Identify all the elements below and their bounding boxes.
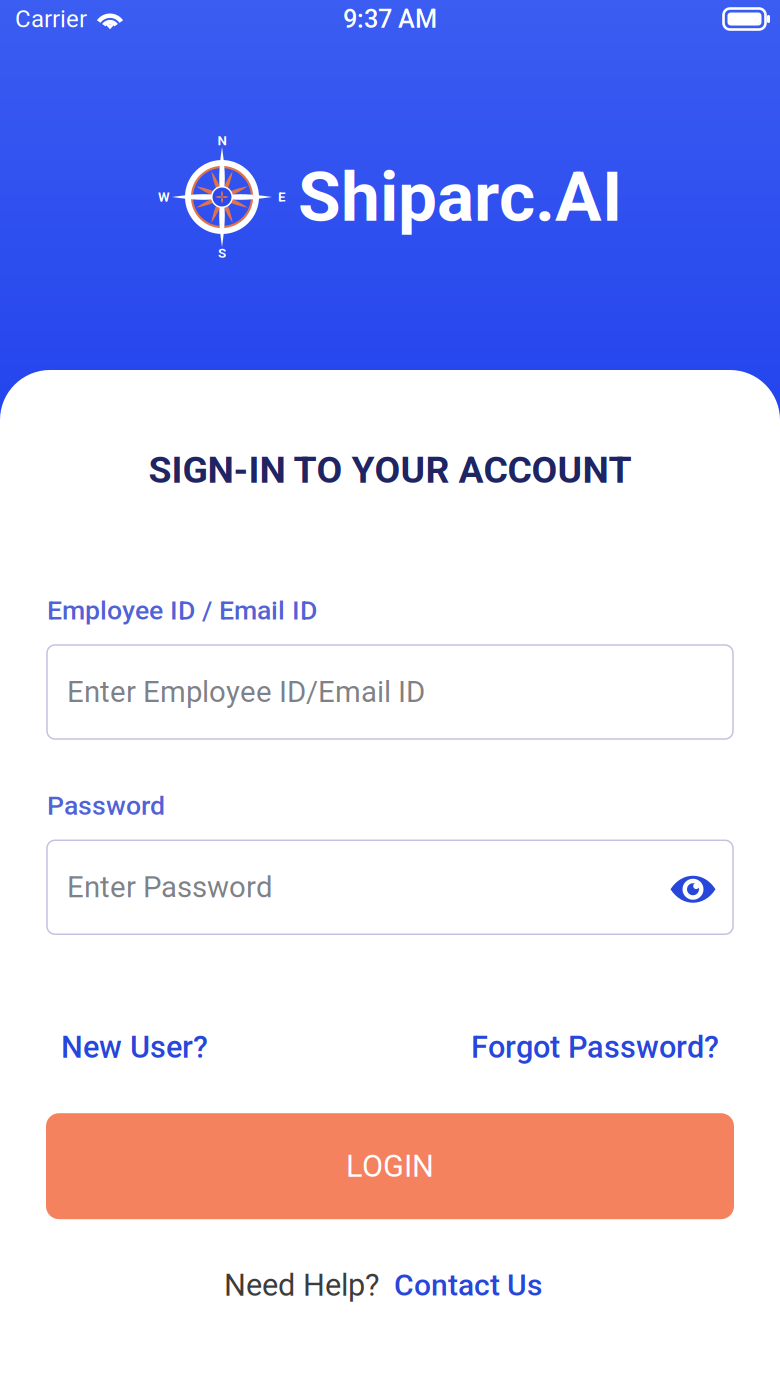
- staticText: Contact Us: [394, 1268, 542, 1303]
- staticText: Employee ID / Email ID: [47, 595, 317, 626]
- button[interactable]: New User?: [61, 1029, 208, 1065]
- button[interactable]: Forgot Password?: [471, 1029, 719, 1065]
- staticText: Carrier: [15, 5, 87, 33]
- button[interactable]: Contact Us: [379, 1268, 542, 1303]
- staticText: Enter Password: [67, 870, 273, 904]
- staticText: Need Help?: [224, 1267, 379, 1303]
- staticText: N: [217, 133, 226, 149]
- staticText: Forgot Password?: [471, 1029, 719, 1065]
- staticText: W: [158, 189, 170, 205]
- staticText: New User?: [61, 1029, 208, 1065]
- staticText: SIGN-IN TO YOUR ACCOUNT: [148, 448, 631, 492]
- staticText: S: [218, 245, 226, 261]
- staticText: E: [278, 189, 286, 205]
- staticText: LOGIN: [346, 1148, 434, 1184]
- button[interactable]: LOGIN: [46, 1113, 734, 1219]
- staticText: 9:37 AM: [343, 4, 437, 34]
- staticText: Enter Employee ID/Email ID: [67, 675, 425, 709]
- staticText: Shiparc.AI: [298, 156, 622, 238]
- button[interactable]: Show password: [668, 871, 718, 904]
- staticText: Password: [47, 790, 165, 821]
